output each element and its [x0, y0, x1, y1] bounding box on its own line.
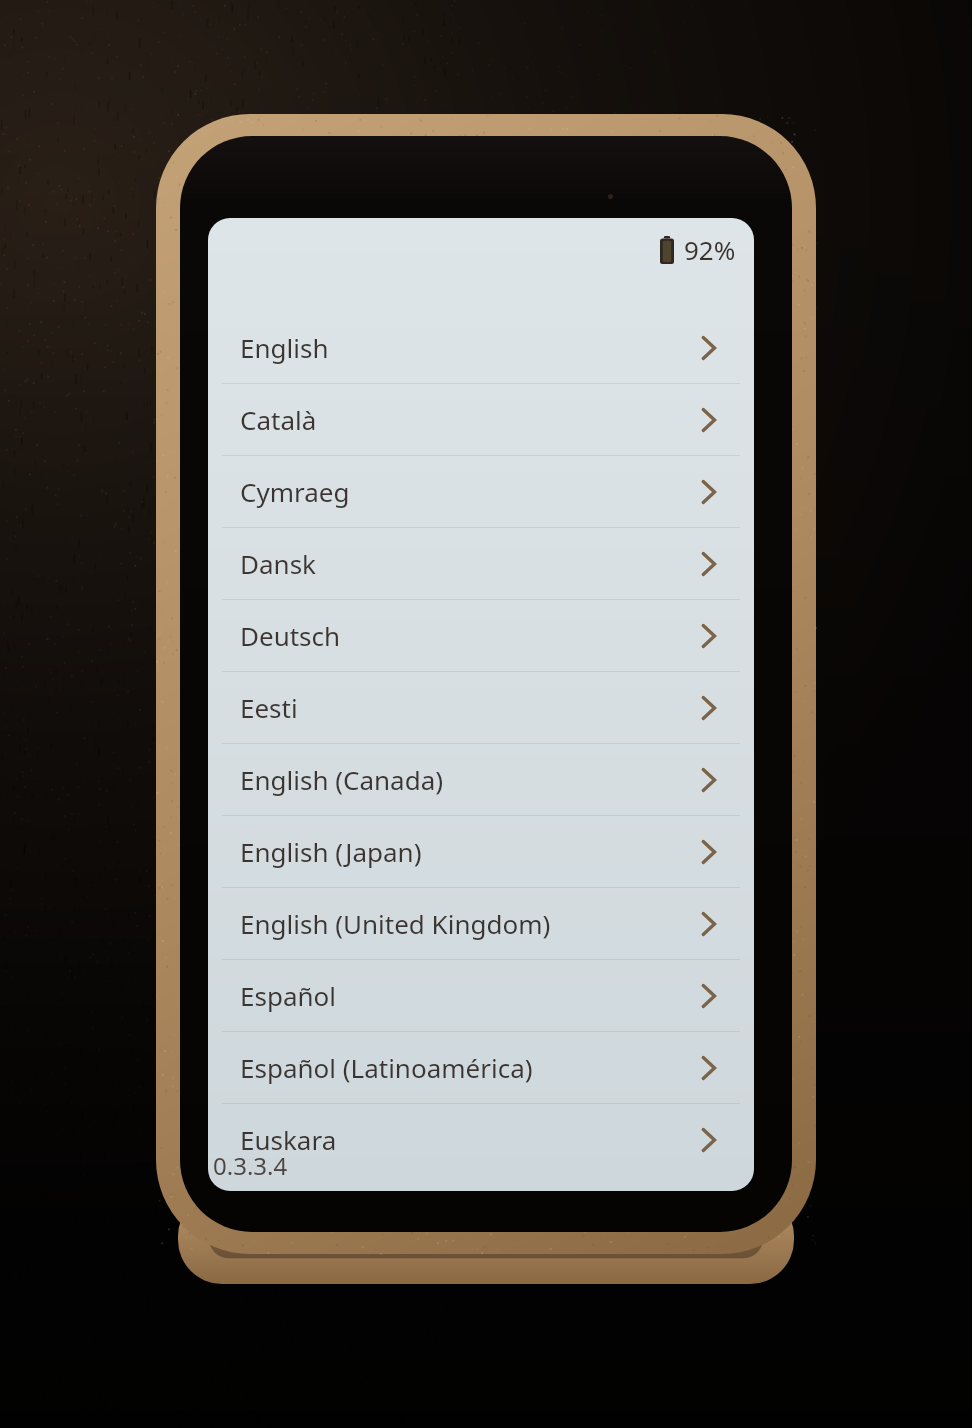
button[interactable]: Español (Latinoamérica)	[208, 1032, 754, 1104]
button[interactable]: English	[208, 312, 754, 384]
button[interactable]: English (Japan)	[208, 816, 754, 888]
button[interactable]: Español	[208, 960, 754, 1032]
button[interactable]: Eesti	[208, 672, 754, 744]
button[interactable]: English (United Kingdom)	[208, 888, 754, 960]
staticText: English (Japan)	[240, 834, 422, 869]
button[interactable]: Deutsch	[208, 600, 754, 672]
staticText: Eesti	[240, 690, 298, 725]
staticText: Català	[240, 402, 317, 437]
staticText: Cymraeg	[240, 474, 350, 509]
staticText: English	[240, 330, 329, 365]
staticText: English (United Kingdom)	[240, 906, 551, 941]
button[interactable]: Euskara	[208, 1104, 754, 1175]
other: Battery 92 percent	[660, 236, 674, 264]
staticText: Euskara	[240, 1122, 337, 1157]
staticText: Dansk	[240, 546, 316, 581]
staticText: 0.3.3.4	[213, 1149, 288, 1182]
button[interactable]: Català	[208, 384, 754, 456]
button[interactable]: Dansk	[208, 528, 754, 600]
staticText: 92%	[684, 232, 736, 267]
staticText: English (Canada)	[240, 762, 444, 797]
staticText: Español (Latinoamérica)	[240, 1050, 533, 1085]
staticText: Deutsch	[240, 618, 341, 653]
staticText: Español	[240, 978, 336, 1013]
button[interactable]: Cymraeg	[208, 456, 754, 528]
button[interactable]: English (Canada)	[208, 744, 754, 816]
